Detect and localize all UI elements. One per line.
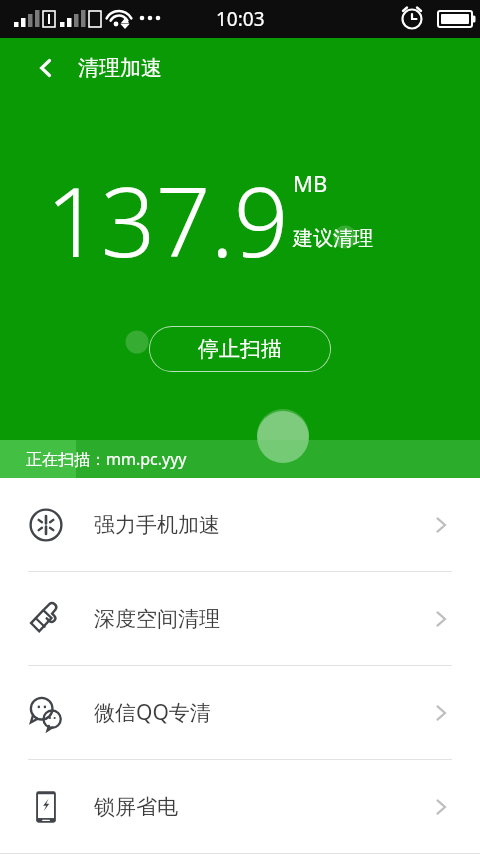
button[interactable]: 停止扫描	[149, 326, 331, 372]
staticText: 停止扫描	[198, 336, 282, 362]
staticText: 清理加速	[78, 55, 162, 81]
button[interactable]: 微信QQ专清	[0, 666, 480, 759]
button[interactable]: Back	[26, 48, 66, 88]
staticText: 建议清理	[293, 226, 373, 251]
staticText: 137.9	[46, 154, 289, 285]
staticText: 正在扫描：mm.pc.yyy	[26, 448, 187, 470]
staticText: MB	[293, 168, 328, 198]
button[interactable]: 强力手机加速	[0, 478, 480, 571]
staticText: 10:03	[216, 6, 265, 32]
button[interactable]: 深度空间清理	[0, 572, 480, 665]
staticText: 强力手机加速	[94, 512, 220, 538]
staticText: 锁屏省电	[94, 794, 178, 820]
staticText: 微信QQ专清	[94, 698, 211, 727]
staticText: 深度空间清理	[94, 606, 220, 632]
button[interactable]: 锁屏省电	[0, 760, 480, 853]
